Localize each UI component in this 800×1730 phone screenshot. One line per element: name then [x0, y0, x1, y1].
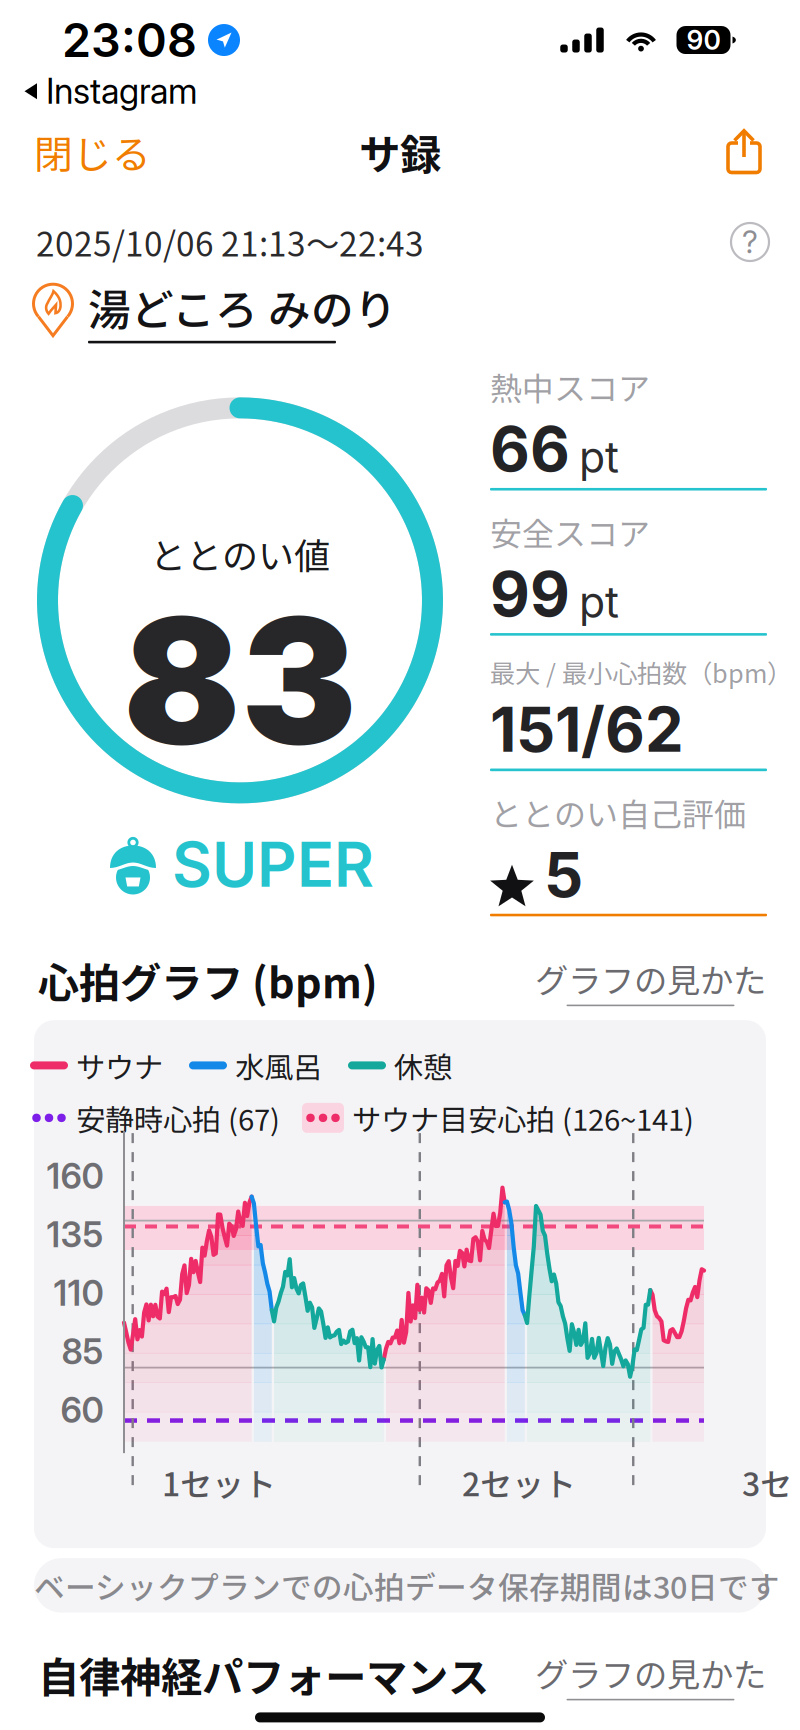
staticText: 安全スコア — [490, 508, 650, 555]
staticText: 湯どころ みのり — [88, 276, 397, 338]
staticText: 151/62 — [490, 692, 684, 767]
staticText: Instagram — [46, 70, 198, 112]
button[interactable]: Help — [722, 214, 778, 270]
staticText: グラフの見かた — [535, 1649, 766, 1697]
staticText: 160 — [46, 1155, 103, 1197]
staticText: ? — [742, 223, 758, 260]
staticText: pt — [579, 431, 619, 483]
staticText: 66 — [490, 412, 570, 486]
staticText: 休憩 — [394, 1044, 452, 1087]
staticText: SUPER — [172, 827, 374, 902]
staticText: グラフの見かた — [535, 954, 766, 1003]
staticText: 60 — [60, 1389, 103, 1431]
staticText: 135 — [46, 1214, 103, 1255]
staticText: 110 — [53, 1272, 103, 1314]
button[interactable]: Share — [700, 117, 800, 187]
staticText: 水風呂 — [235, 1044, 322, 1087]
staticText: 85 — [61, 1331, 103, 1373]
staticText: サ録 — [359, 122, 441, 182]
staticText: pt — [579, 576, 619, 628]
staticText: 99 — [490, 557, 570, 631]
staticText: 最大 / 最小心拍数（bpm） — [490, 654, 792, 690]
staticText: 心拍グラフ (bpm) — [38, 950, 378, 1010]
button[interactable]: グラフの見かた — [535, 1649, 766, 1700]
staticText: 3セ — [742, 1459, 792, 1505]
staticText: 熱中スコア — [490, 363, 650, 410]
staticText: サウナ目安心拍 (126~141) — [352, 1097, 694, 1139]
staticText: 5 — [544, 837, 583, 912]
staticText: 83 — [123, 576, 357, 785]
button[interactable]: グラフの見かた — [535, 954, 766, 1006]
staticText: ベーシックプランでの心拍データ保存期間は30日です — [34, 1563, 780, 1608]
staticText: 安静時心拍 (67) — [76, 1097, 280, 1139]
button[interactable]: 閉じる — [0, 110, 175, 194]
staticText: サウナ — [76, 1044, 163, 1087]
staticText: 2セット — [462, 1459, 576, 1505]
staticText: 1セット — [162, 1459, 276, 1505]
button[interactable]: 湯どころ みのり — [0, 270, 800, 343]
staticText: 90 — [686, 24, 720, 56]
staticText: ととのい値 — [150, 527, 330, 580]
staticText: 2025/10/06 21:13〜22:43 — [36, 218, 424, 266]
staticText: ととのい自己評価 — [490, 789, 746, 835]
staticText: 閉じる — [34, 124, 151, 180]
staticText: 自律神経パフォーマンス — [38, 1645, 489, 1704]
staticText: 23:08 — [62, 12, 197, 68]
